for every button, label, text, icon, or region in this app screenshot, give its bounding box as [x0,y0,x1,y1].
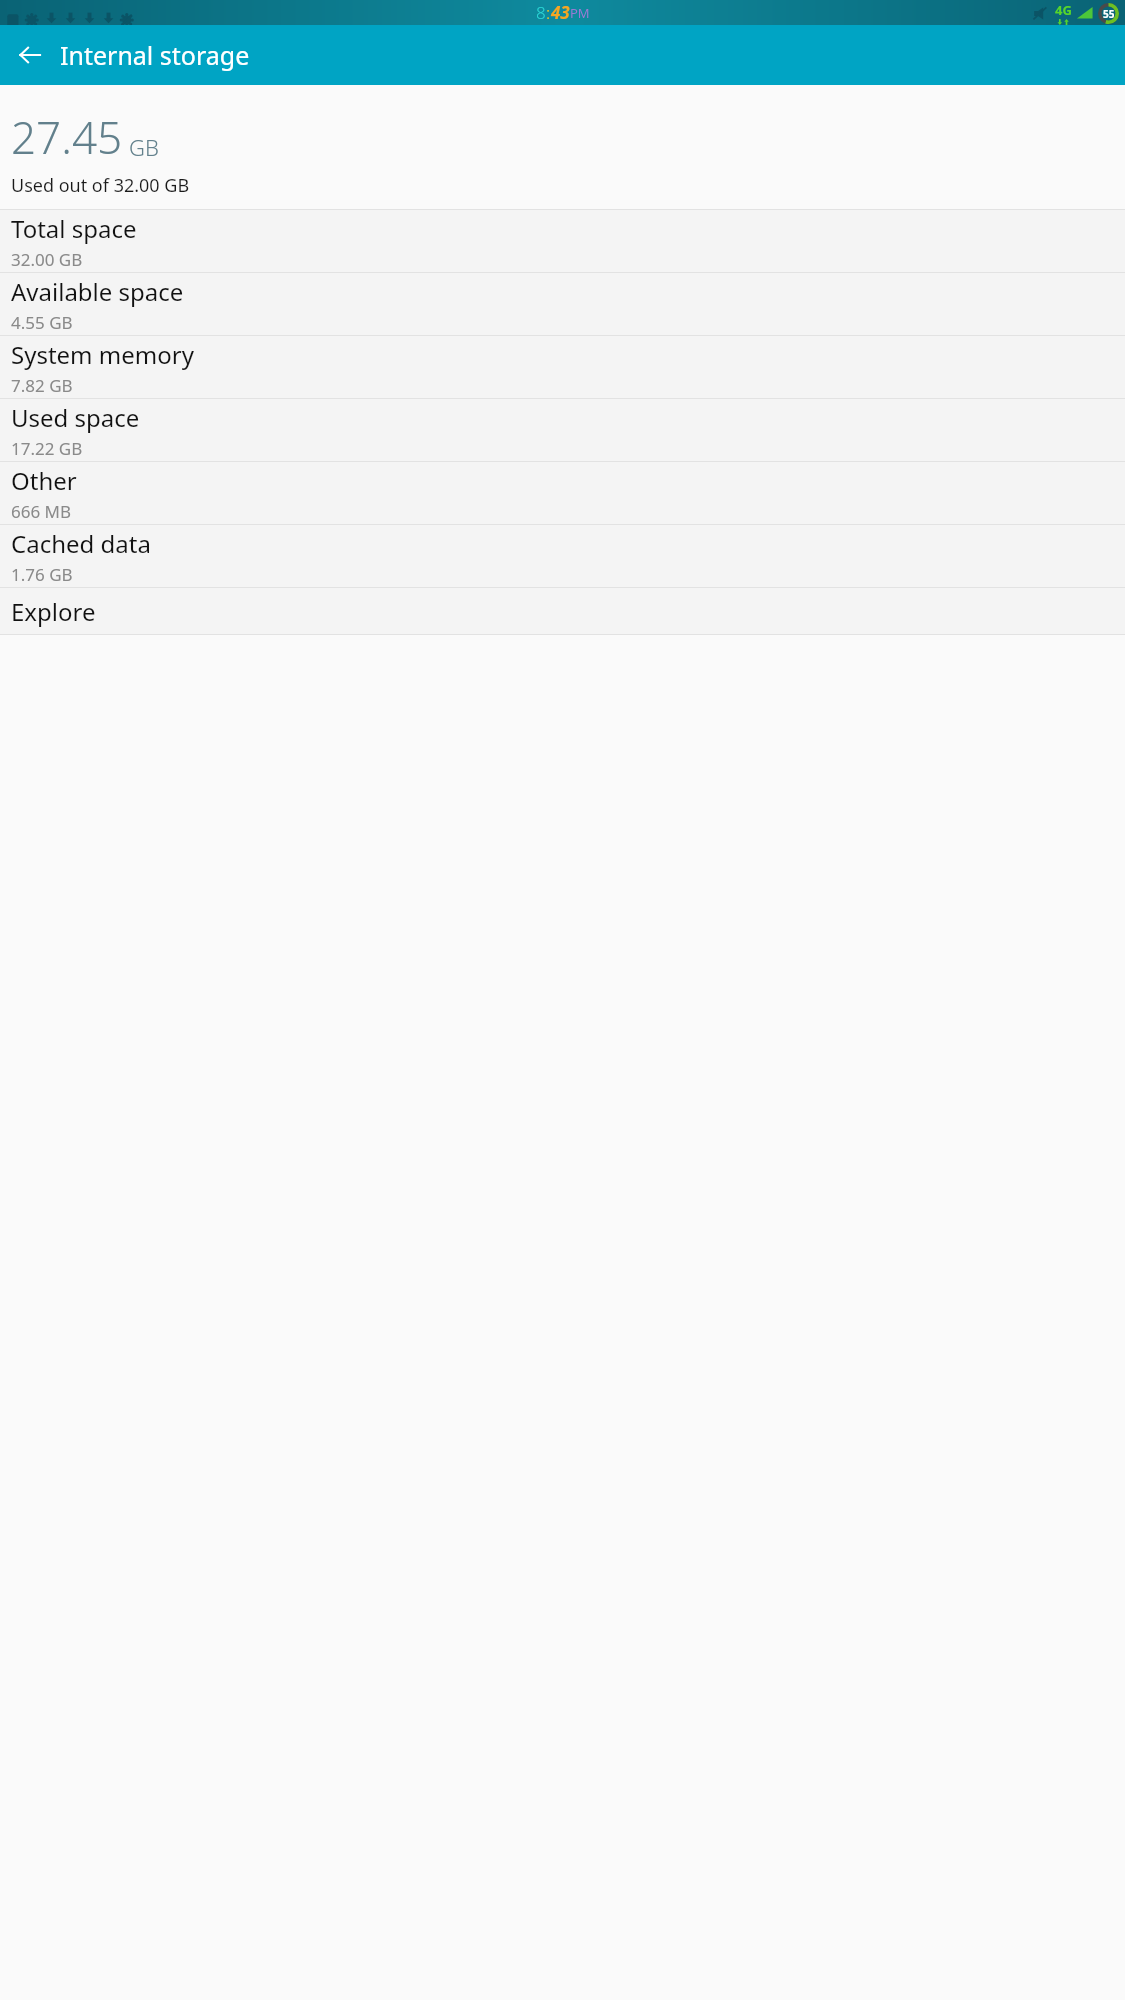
staticText: Other [11,464,77,497]
staticText: Internal storage [60,38,250,72]
staticText: System memory [11,338,194,371]
staticText: Cached data [11,527,151,560]
button[interactable]: Other [0,462,1125,524]
staticText: 32.00 GB [11,248,83,271]
staticText: 55 [1103,7,1115,21]
button[interactable]: Back [11,36,49,74]
staticText: 4.55 GB [11,311,73,334]
button[interactable]: Explore [0,588,1125,634]
staticText: 43 [551,1,570,24]
staticText: 1.76 GB [11,563,73,586]
staticText: 4G [1055,1,1072,19]
staticText: 7.82 GB [11,374,73,397]
staticText: Available space [11,275,184,308]
button[interactable]: System memory [0,336,1125,398]
staticText: Explore [11,595,96,628]
staticText: 8 [536,1,546,24]
staticText: : [546,1,551,24]
staticText: Used space [11,401,140,434]
staticText: 17.22 GB [11,437,83,460]
staticText: GB [129,132,159,162]
button[interactable]: Total space [0,210,1125,272]
staticText: 666 MB [11,500,72,523]
button[interactable]: Cached data [0,525,1125,587]
button[interactable]: Used space [0,399,1125,461]
staticText: Used out of 32.00 GB [11,173,190,198]
staticText: Total space [11,212,137,245]
button[interactable]: Available space [0,273,1125,335]
staticText: 27.45 [11,107,123,167]
staticText: PM [570,4,590,22]
